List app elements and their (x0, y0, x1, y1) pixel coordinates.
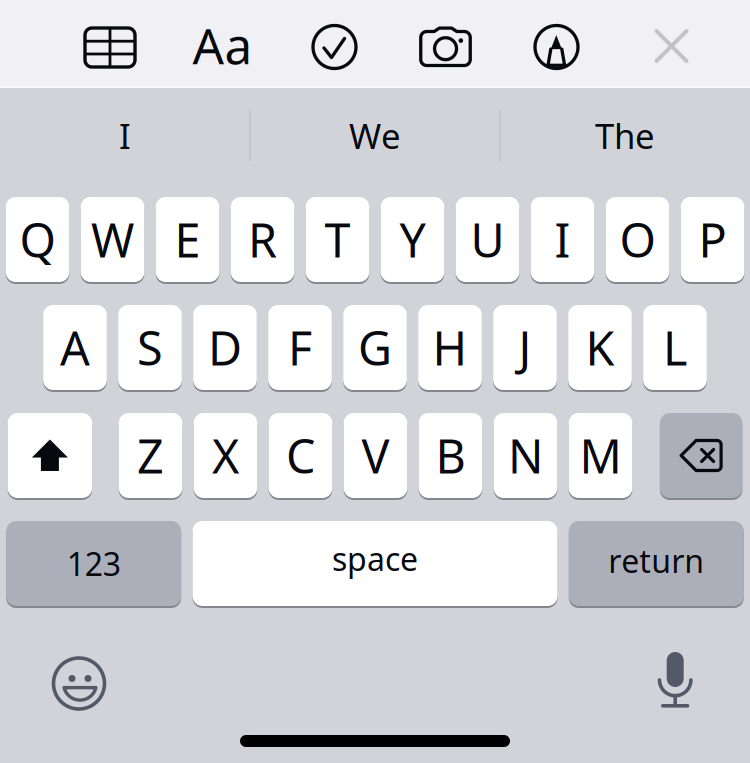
staticText: We (349, 112, 401, 158)
button[interactable]: W (81, 197, 144, 284)
button[interactable]: X (194, 413, 257, 500)
button[interactable]: V (344, 413, 407, 500)
staticText: L (663, 316, 687, 378)
staticText: O (619, 208, 655, 270)
staticText: A (60, 316, 90, 378)
staticText: P (698, 208, 726, 270)
button[interactable]: N (494, 413, 557, 500)
staticText: space (332, 537, 418, 580)
staticText: M (579, 424, 621, 486)
staticText: E (174, 208, 200, 270)
button[interactable]: J (493, 305, 557, 392)
button[interactable]: Close (612, 0, 731, 88)
button[interactable]: A (43, 305, 107, 392)
staticText: U (470, 208, 504, 270)
button[interactable]: The (500, 88, 750, 183)
button[interactable]: K (568, 305, 632, 392)
button[interactable]: T (306, 197, 369, 284)
staticText: Y (399, 208, 425, 270)
button[interactable]: B (419, 413, 482, 500)
button[interactable]: Q (6, 197, 69, 284)
staticText: V (361, 424, 389, 486)
button[interactable]: E (156, 197, 219, 284)
staticText: F (288, 316, 312, 378)
staticText: Aa (192, 12, 252, 78)
staticText: H (432, 316, 467, 378)
button[interactable]: space (192, 521, 557, 608)
button[interactable]: H (418, 305, 482, 392)
button[interactable]: Markup (501, 0, 612, 88)
staticText: W (91, 208, 134, 270)
staticText: B (435, 424, 465, 486)
button[interactable]: M (569, 413, 632, 500)
staticText: S (137, 316, 163, 378)
staticText: X (212, 424, 239, 486)
button[interactable]: G (343, 305, 407, 392)
button[interactable]: Z (119, 413, 182, 500)
staticText: N (508, 424, 543, 486)
button[interactable]: F (268, 305, 332, 392)
staticText: I (119, 112, 131, 158)
button[interactable]: 123 (6, 521, 181, 608)
button[interactable]: P (681, 197, 744, 284)
staticText: I (554, 208, 570, 270)
button[interactable]: U (456, 197, 519, 284)
staticText: The (595, 112, 655, 158)
button[interactable]: S (118, 305, 182, 392)
staticText: Q (19, 208, 55, 270)
staticText: G (358, 316, 392, 378)
staticText: 123 (67, 542, 121, 585)
button[interactable]: C (269, 413, 332, 500)
button[interactable]: R (231, 197, 294, 284)
button[interactable]: Y (381, 197, 444, 284)
button[interactable]: Shift (8, 413, 92, 500)
button[interactable]: Emoji (33, 635, 127, 731)
button[interactable]: We (250, 88, 500, 183)
button[interactable]: Dictation (629, 635, 723, 731)
staticText: return (608, 539, 704, 582)
button[interactable]: Checklist (279, 0, 390, 88)
staticText: R (248, 208, 277, 270)
staticText: C (286, 424, 315, 486)
button[interactable]: Delete (660, 413, 742, 500)
staticText: T (324, 208, 350, 270)
button[interactable]: Camera (390, 0, 501, 88)
button[interactable]: D (193, 305, 257, 392)
button[interactable]: return (569, 521, 744, 608)
button[interactable]: Aa (166, 0, 279, 88)
button[interactable]: O (606, 197, 669, 284)
button[interactable]: Insert table (54, 0, 166, 88)
staticText: K (585, 316, 614, 378)
staticText: J (518, 316, 531, 378)
staticText: D (208, 316, 242, 378)
staticText: Z (137, 424, 164, 486)
button[interactable]: I (531, 197, 594, 284)
button[interactable]: I (0, 88, 250, 183)
button[interactable]: L (643, 305, 707, 392)
